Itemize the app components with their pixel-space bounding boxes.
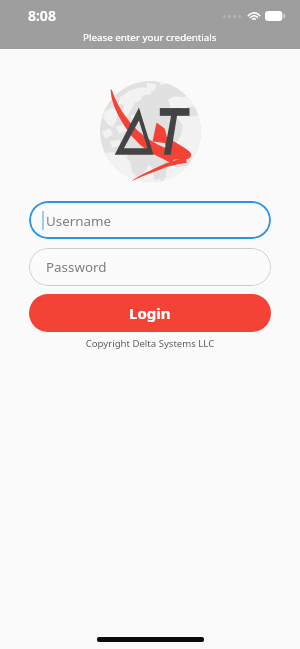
staticText: 8:08 xyxy=(28,6,56,25)
staticText: Password xyxy=(46,258,107,276)
staticText: Copyright Delta Systems LLC xyxy=(0,337,300,350)
staticText: Please enter your credentials xyxy=(83,31,217,44)
button[interactable]: Password xyxy=(29,248,271,286)
staticText: Login xyxy=(129,303,171,323)
button[interactable]: Username xyxy=(29,201,271,239)
staticText: Username xyxy=(46,212,112,230)
button[interactable]: Login xyxy=(29,294,271,332)
